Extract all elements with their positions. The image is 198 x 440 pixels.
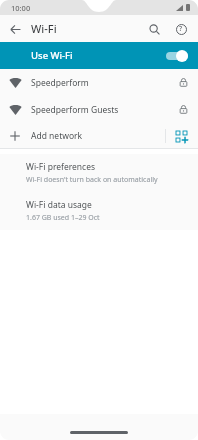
button[interactable]: Wi-Fi data usage	[0, 192, 198, 230]
staticText: Speedperform Guests	[31, 104, 119, 116]
staticText: ?	[179, 24, 183, 34]
button[interactable]: Use Wi-Fi	[0, 42, 198, 69]
button[interactable]: Speedperform Guests	[0, 96, 198, 123]
staticText: Add network	[31, 130, 83, 142]
staticText: Wi-Fi data usage	[26, 199, 92, 211]
staticText: Wi-Fi	[31, 21, 57, 36]
button[interactable]: Scan QR code	[172, 127, 190, 145]
staticText: Wi-Fi doesn't turn back on automatically	[26, 175, 158, 185]
button[interactable]: Help	[169, 17, 193, 41]
button[interactable]: Search	[142, 17, 166, 41]
staticText: Use Wi-Fi	[31, 49, 73, 62]
staticText: 10:00	[11, 3, 31, 13]
button[interactable]: Home	[70, 431, 128, 434]
staticText: Wi-Fi preferences	[26, 161, 96, 173]
button[interactable]: Speedperform	[0, 69, 198, 96]
button[interactable]: Back	[4, 18, 26, 40]
staticText: 1.67 GB used 1–29 Oct	[26, 213, 100, 223]
button[interactable]: Wi-Fi preferences	[0, 154, 198, 192]
button[interactable]: Add network	[0, 123, 198, 148]
staticText: Speedperform	[31, 77, 89, 89]
